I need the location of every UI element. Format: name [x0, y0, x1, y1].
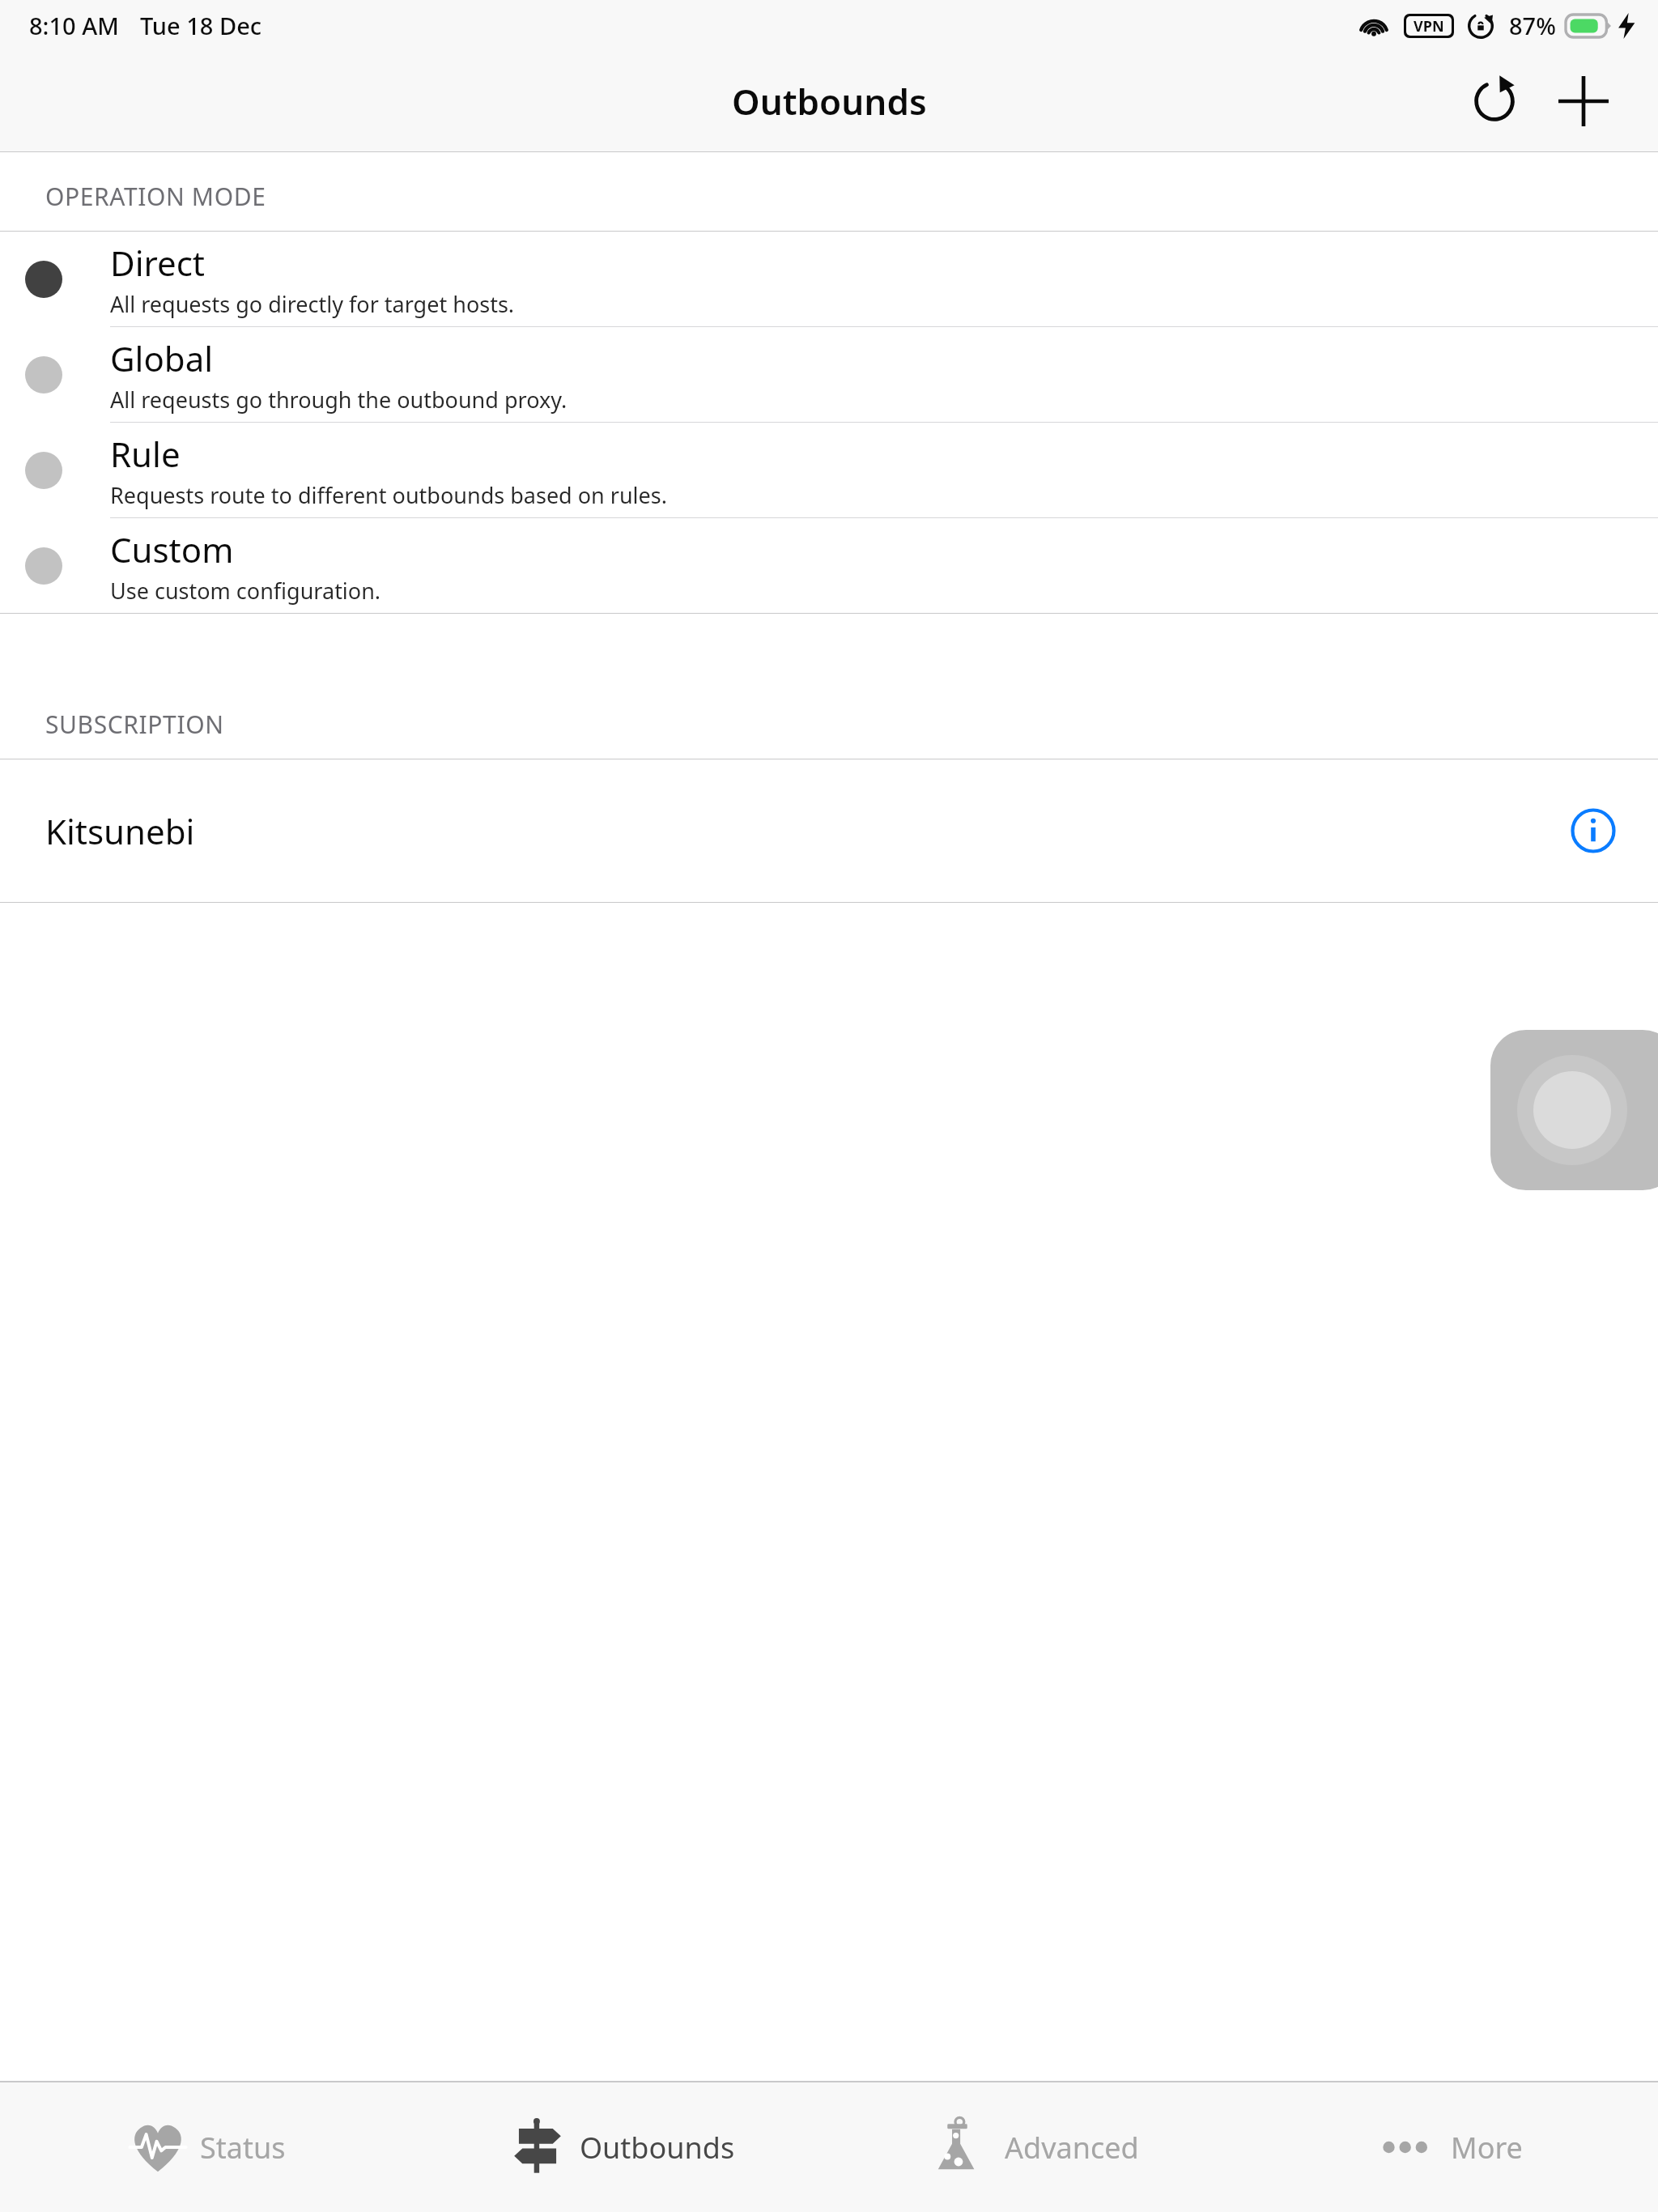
staticText: Outbounds: [732, 77, 927, 125]
button[interactable]: Global: [0, 327, 1658, 422]
staticText: More: [1451, 2128, 1523, 2167]
staticText: All requests go directly for target host…: [110, 289, 515, 319]
button[interactable]: Status: [0, 2082, 414, 2212]
staticText: Outbounds: [580, 2128, 735, 2167]
button[interactable]: More: [1243, 2082, 1658, 2212]
staticText: 87%: [1509, 10, 1556, 41]
button[interactable]: Advanced: [829, 2082, 1243, 2212]
staticText: Global: [110, 335, 214, 381]
button[interactable]: Add: [1545, 62, 1622, 140]
staticText: SUBSCRIPTION: [45, 708, 224, 741]
staticText: VPN: [1414, 16, 1444, 36]
staticText: OPERATION MODE: [45, 180, 266, 213]
button[interactable]: AssistiveTouch: [1490, 1030, 1658, 1190]
staticText: Tue 18 Dec: [140, 10, 262, 41]
staticText: 8:10 AM: [29, 10, 119, 41]
staticText: Advanced: [1005, 2128, 1139, 2167]
button[interactable]: Rule: [0, 423, 1658, 517]
button[interactable]: Outbounds: [414, 2082, 829, 2212]
staticText: All reqeusts go through the outbound pro…: [110, 385, 568, 415]
staticText: Status: [200, 2128, 286, 2167]
staticText: Rule: [110, 431, 181, 477]
staticText: Direct: [110, 240, 206, 286]
button[interactable]: More info: [1551, 789, 1635, 873]
staticText: Use custom configuration.: [110, 576, 381, 606]
button[interactable]: Direct: [0, 232, 1658, 326]
staticText: Kitsunebi: [45, 808, 195, 854]
button[interactable]: Custom: [0, 518, 1658, 613]
staticText: Requests route to different outbounds ba…: [110, 480, 667, 510]
staticText: Custom: [110, 526, 234, 572]
button[interactable]: Kitsunebi: [0, 759, 1658, 902]
button[interactable]: Refresh: [1456, 62, 1533, 140]
